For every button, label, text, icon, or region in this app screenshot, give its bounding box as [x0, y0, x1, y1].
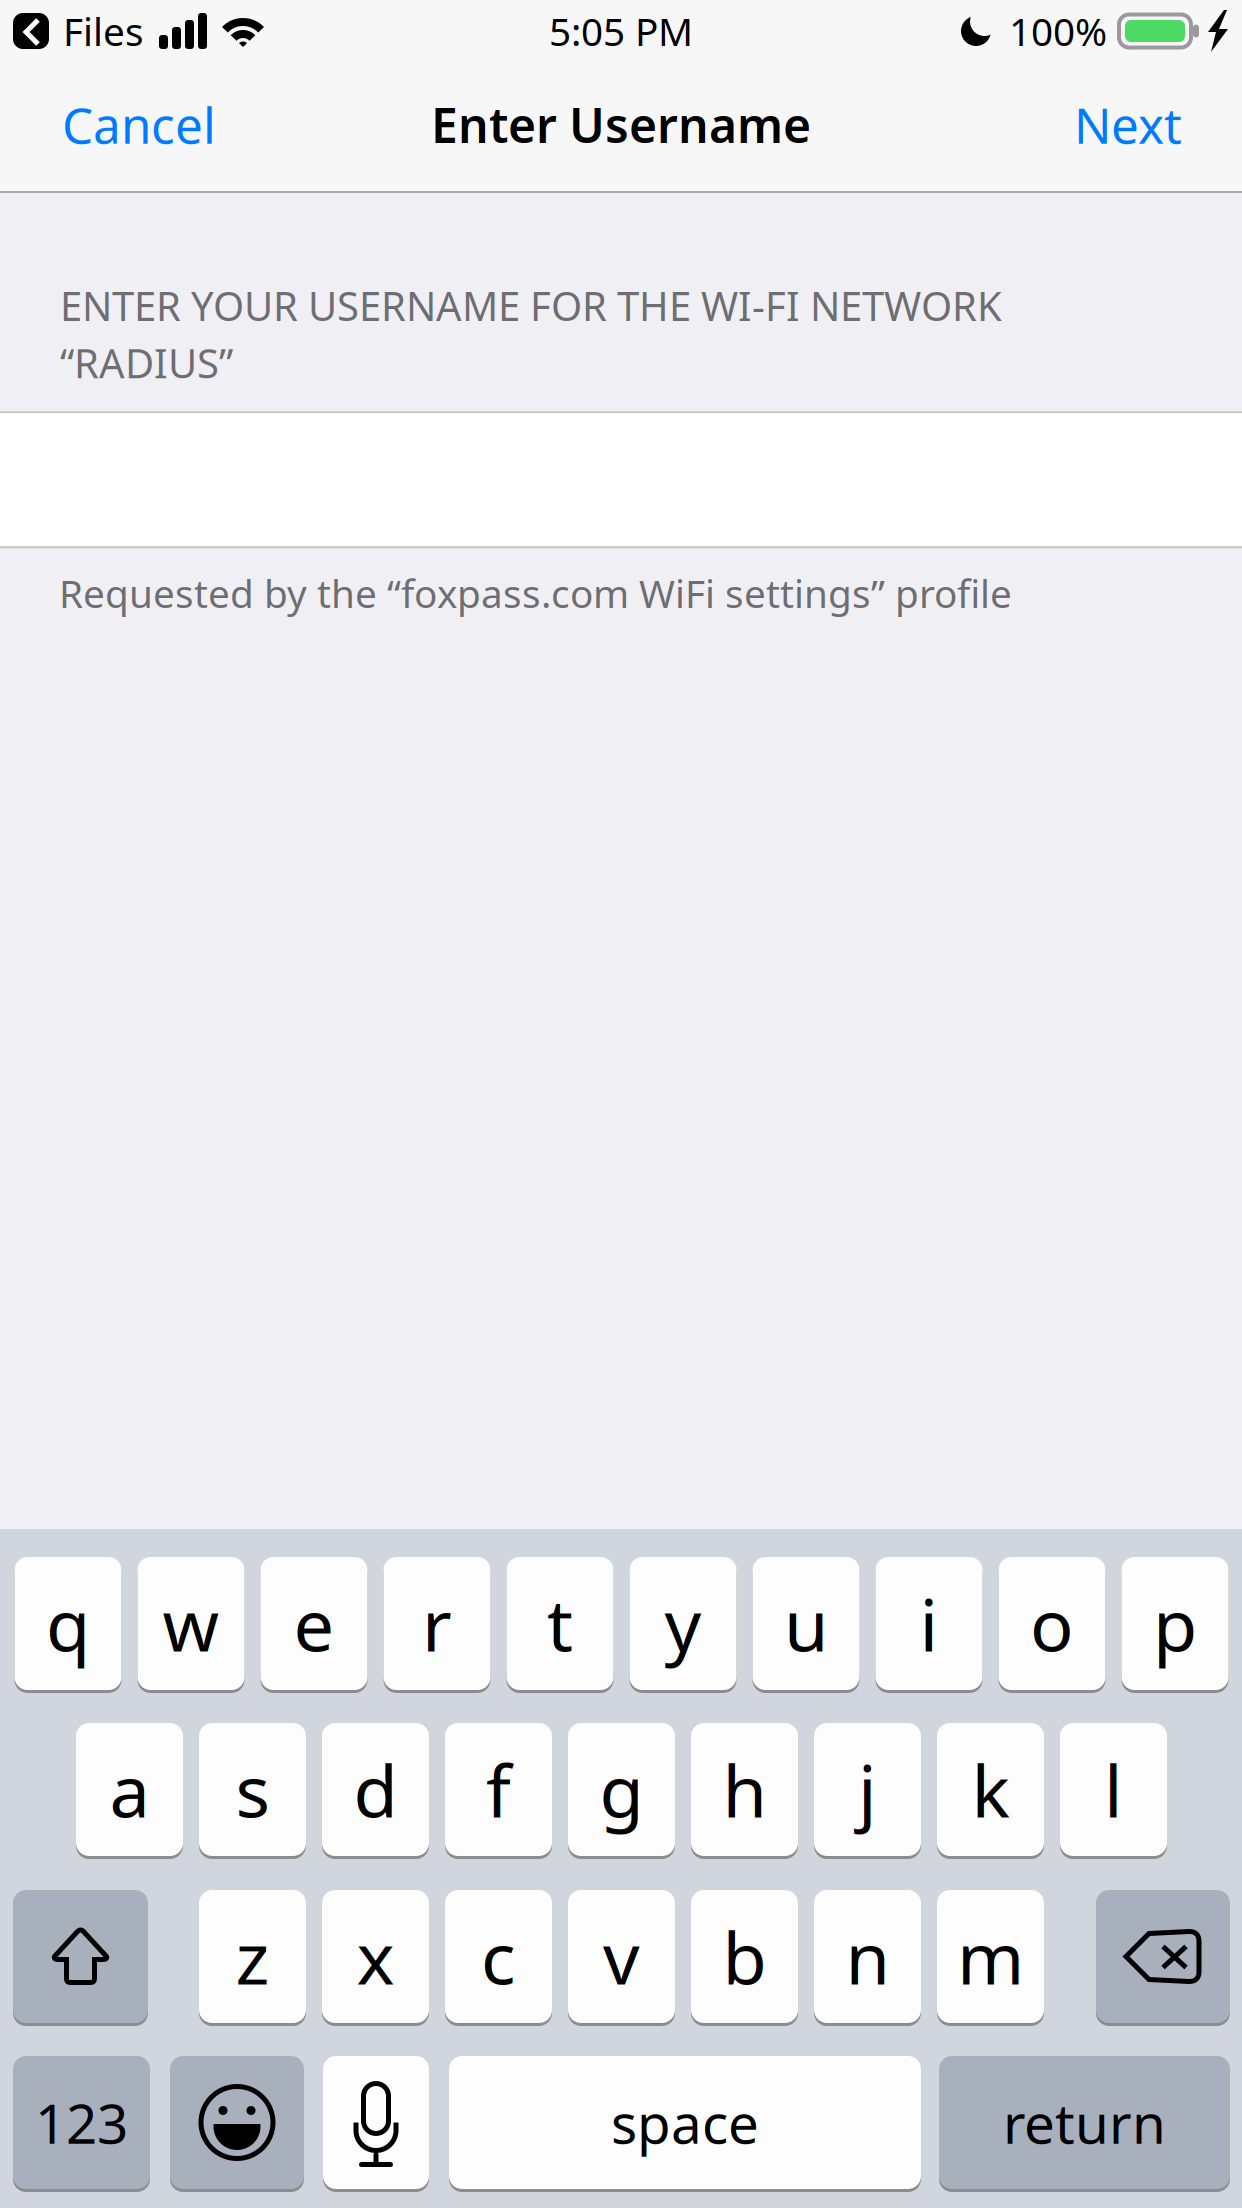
staticText: e: [293, 1576, 334, 1671]
staticText: a: [109, 1742, 149, 1837]
button[interactable]: Back to Files: [0, 0, 144, 62]
button[interactable]: m: [937, 1888, 1044, 2024]
staticText: z: [235, 1909, 269, 2004]
staticText: m: [957, 1909, 1024, 2004]
staticText: Cancel: [62, 92, 216, 157]
staticText: w: [162, 1576, 219, 1671]
button[interactable]: v: [568, 1888, 675, 2024]
button[interactable]: Dictation: [323, 2054, 429, 2190]
staticText: return: [1003, 2086, 1166, 2159]
staticText: Files: [63, 5, 144, 57]
staticText: f: [486, 1742, 511, 1837]
button[interactable]: n: [814, 1888, 921, 2024]
button[interactable]: i: [875, 1555, 982, 1691]
button[interactable]: Delete: [1096, 1888, 1230, 2024]
button[interactable]: c: [445, 1888, 552, 2024]
staticText: Enter Username: [431, 93, 811, 156]
staticText: r: [422, 1576, 452, 1671]
button[interactable]: q: [14, 1555, 121, 1691]
button[interactable]: Next: [1044, 69, 1242, 186]
staticText: space: [611, 2086, 759, 2159]
button[interactable]: t: [506, 1555, 613, 1691]
button[interactable]: w: [137, 1555, 244, 1691]
button[interactable]: Cancel: [0, 69, 246, 186]
staticText: u: [784, 1576, 828, 1671]
button[interactable]: p: [1121, 1555, 1228, 1691]
staticText: 5:05 PM: [549, 5, 693, 57]
button[interactable]: l: [1060, 1721, 1167, 1857]
staticText: x: [356, 1909, 394, 2004]
button[interactable]: j: [814, 1721, 921, 1857]
button[interactable]: s: [199, 1721, 306, 1857]
button[interactable]: k: [937, 1721, 1044, 1857]
staticText: t: [547, 1576, 573, 1671]
button[interactable]: b: [691, 1888, 798, 2024]
staticText: p: [1153, 1576, 1197, 1671]
button[interactable]: z: [199, 1888, 306, 2024]
button[interactable]: Shift: [13, 1888, 148, 2024]
button[interactable]: y: [629, 1555, 736, 1691]
button[interactable]: g: [568, 1721, 675, 1857]
staticText: q: [46, 1576, 90, 1671]
staticText: 123: [35, 2086, 128, 2159]
staticText: v: [603, 1909, 640, 2004]
button[interactable]: o: [998, 1555, 1105, 1691]
staticText: Requested by the “foxpass.com WiFi setti…: [59, 567, 1012, 618]
staticText: Next: [1074, 92, 1182, 157]
button[interactable]: a: [76, 1721, 183, 1857]
button[interactable]: h: [691, 1721, 798, 1857]
staticText: i: [919, 1576, 938, 1671]
staticText: d: [353, 1742, 397, 1837]
staticText: k: [971, 1742, 1009, 1837]
staticText: n: [845, 1909, 889, 2004]
button[interactable]: return: [939, 2054, 1230, 2190]
button[interactable]: 123: [13, 2054, 150, 2190]
button[interactable]: r: [383, 1555, 490, 1691]
staticText: s: [235, 1742, 269, 1837]
staticText: c: [481, 1909, 516, 2004]
staticText: b: [722, 1909, 766, 2004]
staticText: y: [664, 1576, 701, 1671]
staticText: 100%: [1009, 5, 1107, 57]
button[interactable]: x: [322, 1888, 429, 2024]
button[interactable]: d: [322, 1721, 429, 1857]
button[interactable]: space: [449, 2054, 921, 2190]
button[interactable]: e: [260, 1555, 367, 1691]
staticText: l: [1104, 1742, 1123, 1837]
staticText: ENTER YOUR USERNAME FOR THE WI-FI NETWOR…: [60, 279, 1002, 389]
staticText: g: [599, 1742, 643, 1837]
button[interactable]: f: [445, 1721, 552, 1857]
button[interactable]: Emoji: [170, 2054, 304, 2190]
staticText: h: [722, 1742, 766, 1837]
staticText: j: [858, 1742, 877, 1837]
staticText: o: [1030, 1576, 1074, 1671]
button[interactable]: u: [752, 1555, 859, 1691]
